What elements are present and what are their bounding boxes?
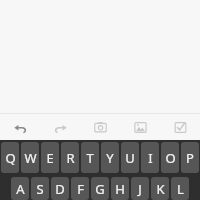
button[interactable]: Undo [0, 114, 40, 140]
button[interactable]: Checklist [160, 114, 200, 140]
staticText: R [66, 149, 75, 167]
button[interactable]: Y [101, 142, 119, 173]
button[interactable]: E [41, 142, 59, 173]
button[interactable]: Camera [80, 114, 120, 140]
button[interactable]: U [121, 142, 139, 173]
staticText: O [165, 149, 176, 167]
button[interactable]: S [31, 177, 49, 200]
staticText: J [138, 180, 142, 198]
staticText: Q [5, 149, 16, 167]
staticText: D [55, 180, 65, 198]
staticText: U [125, 149, 135, 167]
button[interactable]: O [161, 142, 179, 173]
button[interactable]: Q [1, 142, 19, 173]
button[interactable]: R [61, 142, 79, 173]
button[interactable]: F [71, 177, 89, 200]
button[interactable]: H [111, 177, 129, 200]
button[interactable]: P [181, 142, 199, 173]
staticText: W [24, 149, 37, 167]
staticText: H [115, 180, 125, 198]
button[interactable]: Redo [40, 114, 80, 140]
staticText: T [86, 149, 94, 167]
staticText: G [95, 180, 105, 198]
button[interactable]: Insert image [120, 114, 160, 140]
button[interactable]: J [131, 177, 149, 200]
button[interactable]: K [151, 177, 169, 200]
staticText: S [36, 180, 44, 198]
button[interactable]: W [21, 142, 39, 173]
button[interactable]: A [11, 177, 29, 200]
staticText: L [177, 180, 184, 198]
staticText: P [186, 149, 194, 167]
staticText: K [156, 180, 165, 198]
button[interactable]: T [81, 142, 99, 173]
staticText: I [148, 149, 153, 167]
staticText: F [77, 180, 84, 198]
staticText: A [16, 180, 25, 198]
button[interactable]: I [141, 142, 159, 173]
staticText: Y [106, 149, 114, 167]
button[interactable]: L [171, 177, 189, 200]
button[interactable]: D [51, 177, 69, 200]
staticText: E [46, 149, 54, 167]
button[interactable]: G [91, 177, 109, 200]
